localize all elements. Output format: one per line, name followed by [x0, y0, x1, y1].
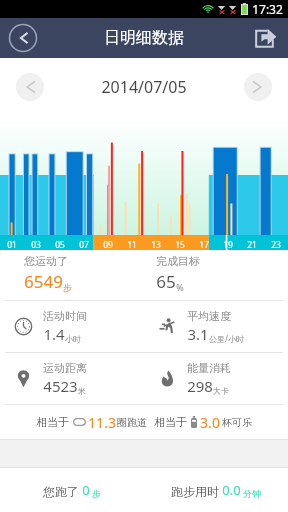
staticText: 09 — [103, 239, 113, 251]
staticText: 能量消耗 — [187, 361, 231, 375]
staticText: 相当于 — [36, 415, 69, 429]
staticText: 298 — [187, 376, 213, 396]
staticText: 19 — [223, 239, 233, 251]
staticText: 2014/07/05 — [101, 76, 187, 98]
button[interactable]: Back — [8, 23, 38, 53]
staticText: 杯可乐 — [222, 416, 252, 429]
staticText: 4523 — [43, 376, 78, 396]
staticText: 公里/小时 — [209, 333, 244, 344]
staticText: 步 — [63, 282, 72, 293]
staticText: 15 — [175, 239, 185, 251]
staticText: 您运动了 — [24, 254, 68, 268]
staticText: 17 — [199, 239, 209, 251]
staticText: 小时 — [65, 334, 81, 344]
staticText: 跑步用时 — [171, 484, 219, 499]
button[interactable]: Next day — [244, 73, 272, 101]
staticText: 07 — [79, 239, 89, 251]
staticText: 运动距离 — [43, 361, 87, 375]
staticText: 步 — [92, 488, 101, 499]
staticText: 3.1 — [187, 324, 209, 344]
staticText: 65 — [156, 270, 176, 293]
staticText: 03 — [31, 239, 41, 251]
staticText: 日明细数据 — [104, 28, 184, 48]
staticText: 分钟 — [243, 488, 261, 499]
button[interactable]: Previous day — [16, 73, 44, 101]
staticText: % — [176, 281, 184, 293]
staticText: 05 — [55, 239, 65, 251]
staticText: 您跑了 — [43, 484, 79, 499]
staticText: 21 — [247, 239, 257, 251]
staticText: 相当于 — [154, 415, 187, 429]
staticText: 17:32 — [252, 1, 283, 17]
staticText: 3.0 — [200, 413, 220, 432]
staticText: 23 — [271, 239, 281, 251]
staticText: 11 — [127, 239, 137, 251]
staticText: 米 — [78, 386, 86, 396]
staticText: 平均速度 — [187, 309, 231, 323]
staticText: 大卡 — [213, 386, 229, 396]
staticText: 完成目标 — [156, 254, 200, 268]
staticText: 1.4 — [43, 324, 65, 344]
staticText: 13 — [151, 239, 161, 251]
staticText: 0.0 — [222, 481, 241, 499]
staticText: 0 — [82, 481, 90, 499]
button[interactable]: Share — [252, 25, 278, 51]
staticText: 01 — [7, 239, 17, 251]
staticText: 活动时间 — [43, 309, 87, 323]
staticText: 6549 — [24, 270, 63, 293]
staticText: 圈跑道 — [117, 416, 147, 429]
staticText: 11.3 — [88, 413, 116, 432]
